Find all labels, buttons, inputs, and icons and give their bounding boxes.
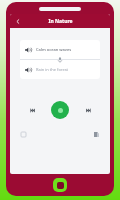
- staticText: Calm ocean waves: [36, 47, 72, 52]
- button[interactable]: Home: [53, 178, 67, 192]
- button[interactable]: Favourite: [18, 129, 29, 140]
- button[interactable]: Microphone: [55, 55, 65, 65]
- button[interactable]: Next: [82, 104, 94, 116]
- staticText: In Nature: [48, 18, 73, 25]
- button[interactable]: Previous: [26, 104, 38, 116]
- staticText: Rain in the forest: [36, 67, 69, 72]
- button[interactable]: Rain in the forest: [20, 64, 100, 75]
- button[interactable]: Playlist: [91, 129, 102, 140]
- button[interactable]: Back: [13, 16, 23, 26]
- button[interactable]: Calm ocean waves: [20, 44, 100, 55]
- button[interactable]: Play: [51, 101, 69, 119]
